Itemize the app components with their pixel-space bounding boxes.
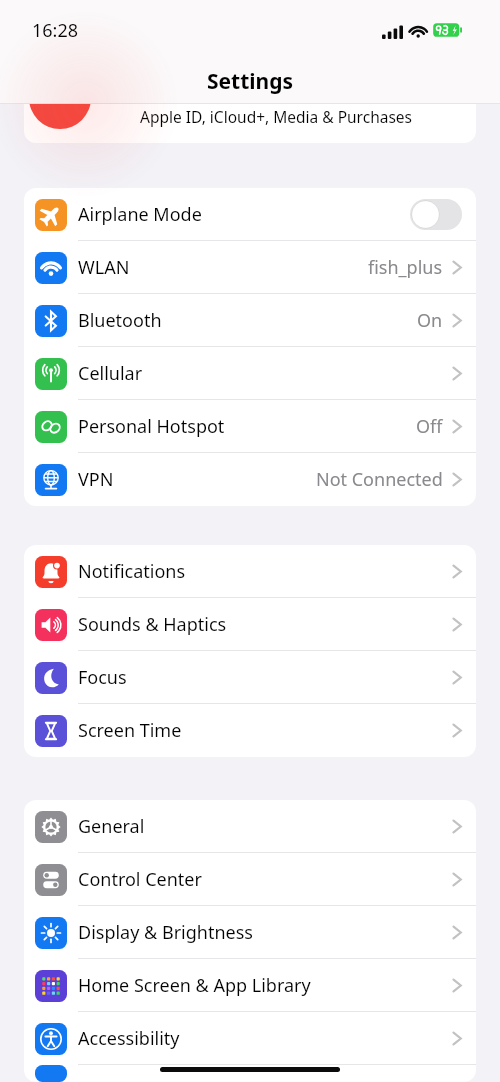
button[interactable]: Airplane Mode toggle (410, 199, 462, 230)
button[interactable]: Bluetooth (24, 294, 476, 347)
button[interactable]: Screen Time (24, 704, 476, 757)
staticText: Not Connected (316, 467, 443, 492)
staticText: Home Screen & App Library (78, 973, 311, 998)
staticText: Airplane Mode (78, 202, 202, 227)
button[interactable]: Wallpaper (24, 1065, 476, 1082)
staticText: VPN (78, 467, 114, 492)
button[interactable]: WLAN (24, 241, 476, 294)
staticText: 16:28 (32, 18, 79, 43)
button[interactable]: Personal Hotspot (24, 400, 476, 453)
button[interactable]: Home Screen & App Library (24, 959, 476, 1012)
staticText: Screen Time (78, 718, 182, 743)
button[interactable]: VPN (24, 453, 476, 506)
staticText: Focus (78, 665, 127, 690)
button[interactable]: Airplane Mode (24, 188, 476, 241)
button[interactable]: Sounds & Haptics (24, 598, 476, 651)
staticText: On (417, 308, 443, 333)
staticText: Control Center (78, 867, 202, 892)
staticText: Bluetooth (78, 308, 162, 333)
staticText: Display & Brightness (78, 920, 253, 945)
staticText: Accessibility (78, 1026, 180, 1051)
button[interactable]: Control Center (24, 853, 476, 906)
button[interactable]: Accessibility (24, 1012, 476, 1065)
button[interactable]: Cellular (24, 347, 476, 400)
button[interactable]: Display & Brightness (24, 906, 476, 959)
button[interactable]: Focus (24, 651, 476, 704)
staticText: General (78, 814, 145, 839)
staticText: Off (416, 414, 443, 439)
button[interactable]: Notifications (24, 545, 476, 598)
staticText: fish_plus (368, 255, 443, 280)
staticText: Sounds & Haptics (78, 612, 227, 637)
staticText: Personal Hotspot (78, 414, 225, 439)
staticText: Notifications (78, 559, 186, 584)
button[interactable]: General (24, 800, 476, 853)
button[interactable]: Apple ID, iCloud+, Media & Purchases (24, 104, 476, 143)
staticText: WLAN (78, 255, 130, 280)
staticText: Cellular (78, 361, 143, 386)
staticText: Settings (207, 67, 294, 96)
staticText: Apple ID, iCloud+, Media & Purchases (140, 106, 412, 127)
